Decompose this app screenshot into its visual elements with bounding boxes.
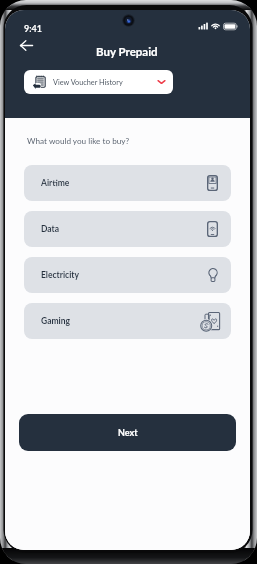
button[interactable]: Airtime — [24, 165, 231, 201]
staticText: Data — [41, 224, 60, 234]
staticText: Buy Prepaid — [96, 45, 158, 59]
staticText: Gaming — [41, 316, 71, 326]
staticText: 9:41 — [24, 23, 42, 34]
staticText: Electricity — [41, 270, 80, 280]
button[interactable]: Next — [19, 414, 236, 451]
button[interactable]: Electricity — [24, 257, 231, 293]
staticText: What would you like to buy? — [27, 136, 130, 146]
button[interactable]: Gaming — [24, 303, 231, 339]
staticText: Next — [118, 427, 138, 438]
button[interactable]: Back — [15, 34, 37, 56]
button[interactable]: Data — [24, 211, 231, 247]
staticText: Airtime — [41, 178, 70, 188]
button[interactable]: View Voucher History — [24, 70, 173, 94]
staticText: View Voucher History — [53, 78, 123, 87]
